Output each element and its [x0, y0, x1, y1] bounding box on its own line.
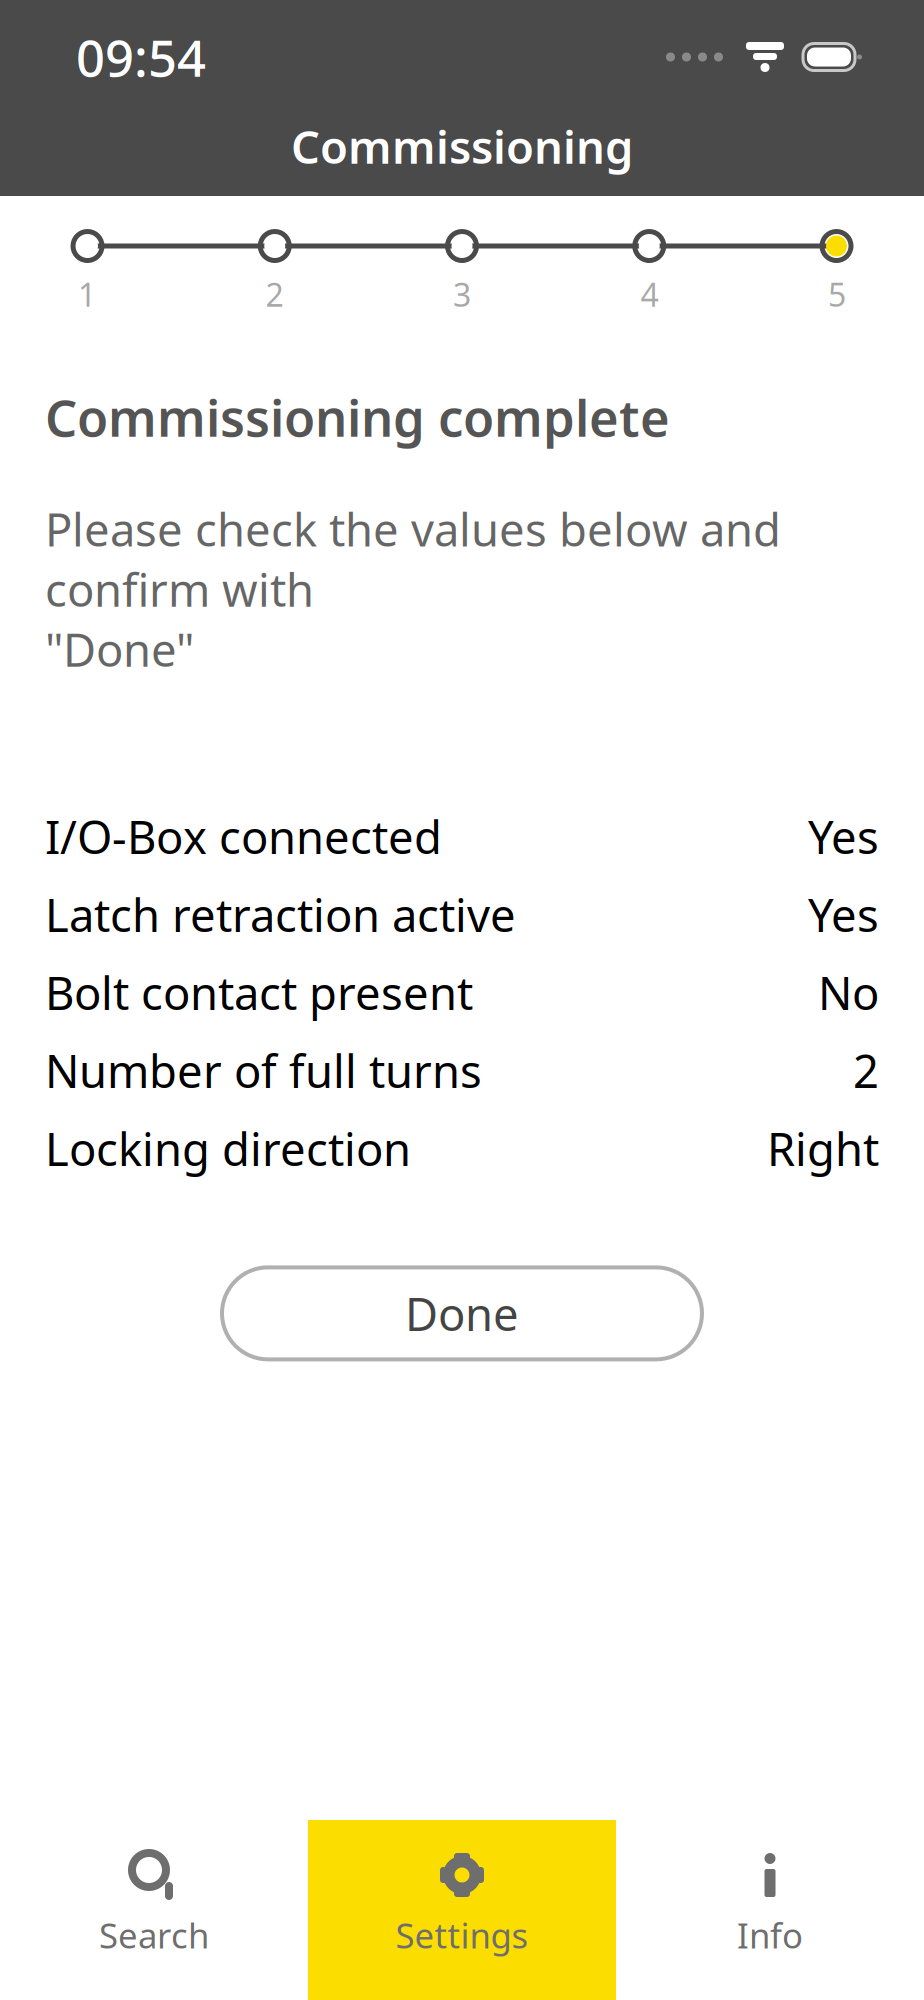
staticText: Done: [405, 1283, 519, 1343]
staticText: 09:54: [76, 23, 206, 91]
staticText: Info: [737, 1912, 803, 1958]
staticText: 5: [828, 273, 846, 315]
staticText: 2: [853, 1040, 879, 1100]
staticText: Locking direction: [45, 1118, 411, 1178]
staticText: Search: [99, 1912, 209, 1958]
staticText: 2: [265, 273, 283, 315]
staticText: 3: [453, 273, 471, 315]
staticText: 1: [78, 273, 96, 315]
staticText: Yes: [808, 806, 879, 866]
staticText: Settings: [395, 1912, 528, 1958]
staticText: Commissioning complete: [45, 383, 670, 451]
staticText: 4: [640, 273, 658, 315]
staticText: Latch retraction active: [45, 884, 516, 944]
staticText: I/O-Box connected: [45, 806, 442, 866]
staticText: Right: [767, 1118, 879, 1178]
staticText: Commissioning: [291, 116, 633, 176]
button[interactable]: Info: [616, 1820, 924, 2000]
staticText: No: [818, 962, 879, 1022]
button[interactable]: Search: [0, 1820, 308, 2000]
staticText: Bolt contact present: [45, 962, 473, 1022]
button[interactable]: Done: [222, 1267, 702, 1359]
button[interactable]: Settings: [308, 1820, 616, 2000]
staticText: Yes: [808, 884, 879, 944]
staticText: Number of full turns: [45, 1040, 482, 1100]
staticText: Please check the values below and confir…: [45, 499, 781, 679]
